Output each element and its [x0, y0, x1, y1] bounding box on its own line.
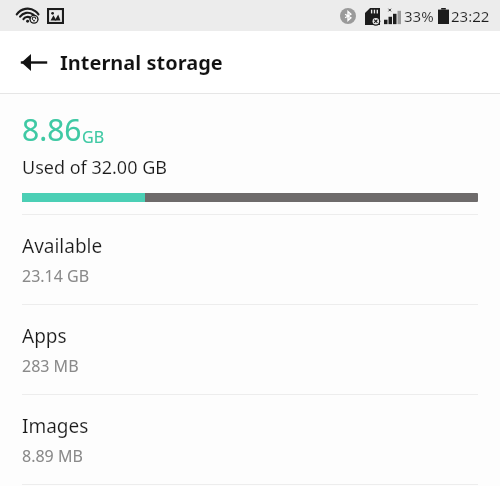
staticText: 8.86: [22, 109, 82, 150]
staticText: Images: [22, 413, 89, 439]
staticText: Available: [22, 233, 103, 259]
staticText: 33%: [404, 6, 434, 26]
button[interactable]: Apps: [0, 305, 500, 394]
button[interactable]: Back: [11, 40, 55, 84]
staticText: Used of 32.00 GB: [22, 155, 167, 180]
staticText: GB: [82, 126, 105, 148]
staticText: Apps: [22, 323, 67, 349]
button[interactable]: Available: [0, 215, 500, 304]
staticText: Internal storage: [60, 49, 223, 76]
staticText: 283 MB: [22, 355, 79, 377]
staticText: 8.89 MB: [22, 445, 83, 467]
button[interactable]: Images: [0, 395, 500, 484]
staticText: 23:22: [451, 6, 490, 26]
staticText: 23.14 GB: [22, 265, 90, 287]
